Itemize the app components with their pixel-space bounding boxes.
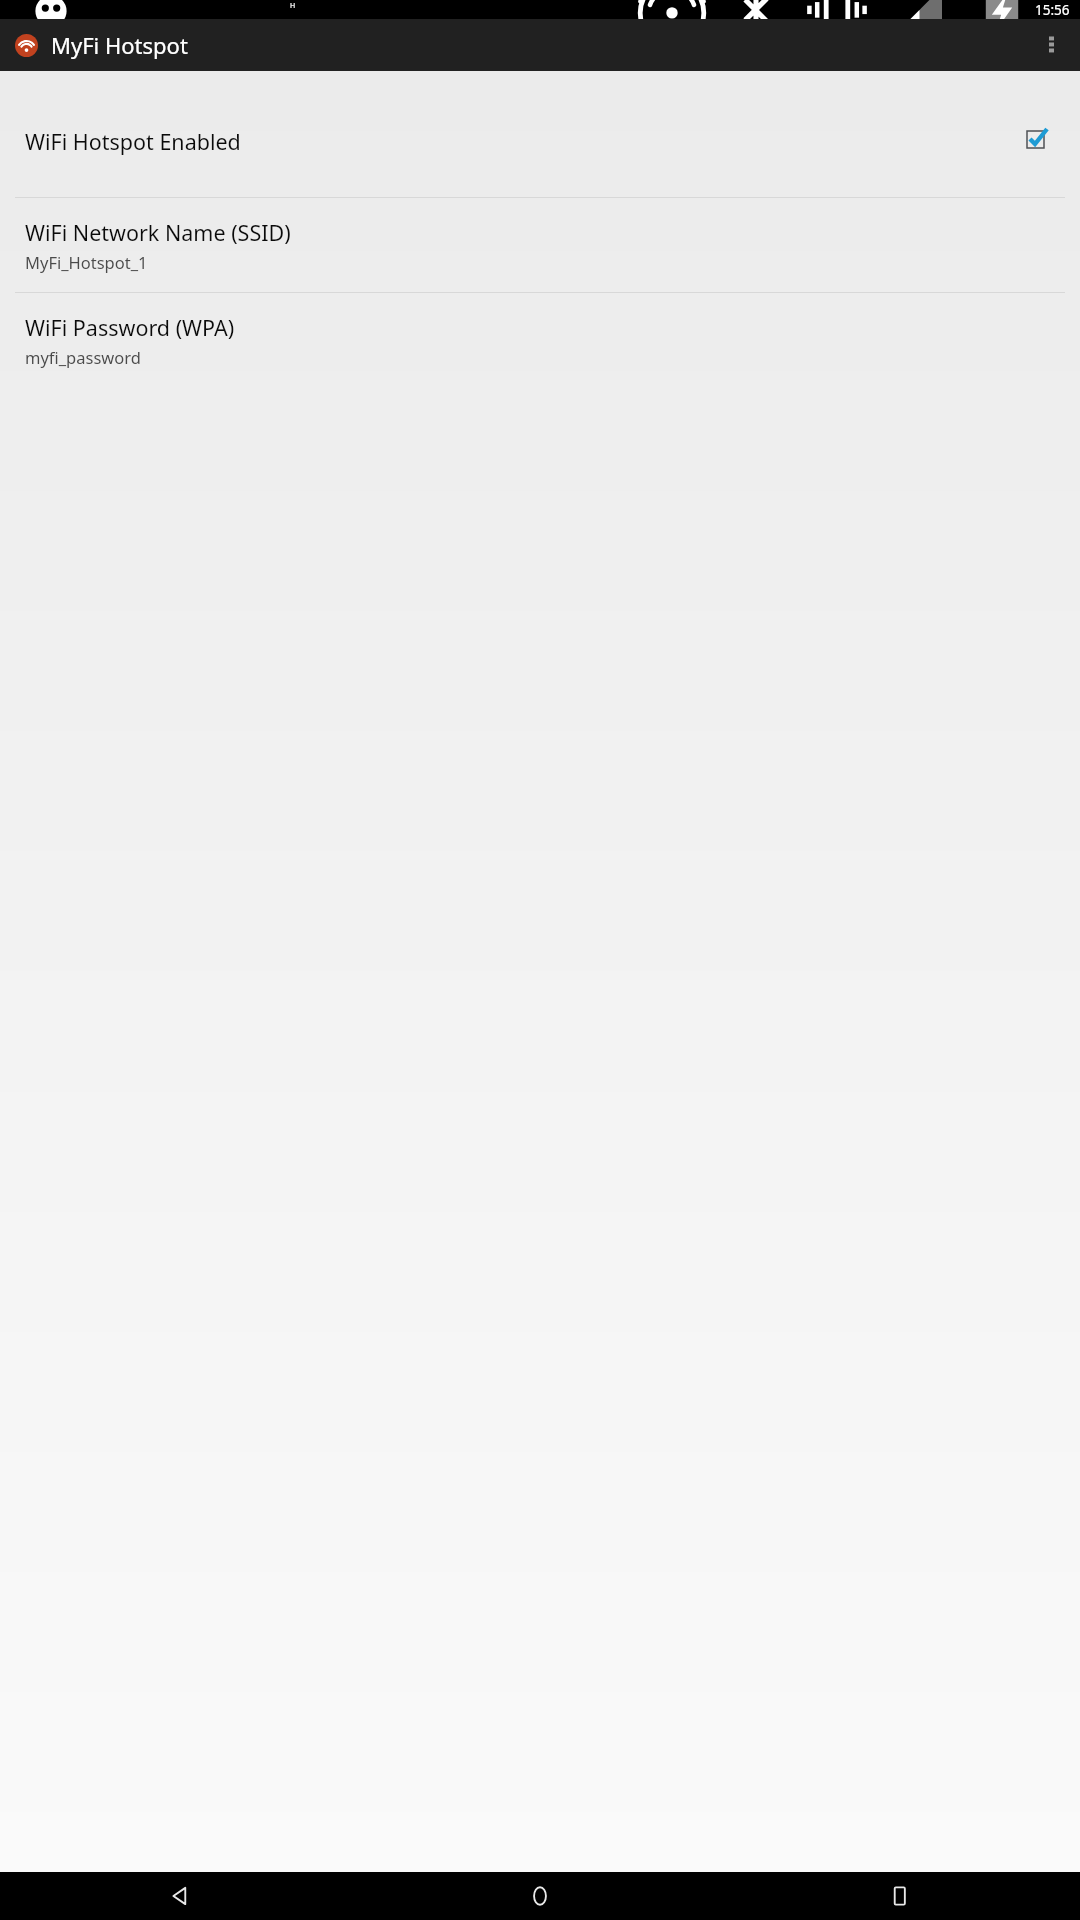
staticText: MyFi Hotspot [51, 30, 188, 60]
button[interactable]: WiFi Hotspot Enabled [0, 113, 1080, 169]
button[interactable]: More options [1035, 29, 1067, 61]
staticText: H [290, 1, 296, 11]
staticText: WiFi Network Name (SSID) [25, 218, 291, 247]
button[interactable]: WiFi Password (WPA) [0, 293, 1080, 387]
staticText: myfi_password [25, 346, 141, 368]
staticText: 15:56 [1035, 1, 1070, 19]
button[interactable]: Recent apps [720, 1872, 1080, 1920]
staticText: WiFi Password (WPA) [25, 313, 235, 342]
staticText: MyFi_Hotspot_1 [25, 251, 148, 273]
button[interactable]: Home [360, 1872, 720, 1920]
staticText: WiFi Hotspot Enabled [25, 127, 241, 156]
button[interactable]: Back [0, 1872, 360, 1920]
other: WiFi Hotspot Enabled checkbox [1024, 126, 1054, 156]
button[interactable]: WiFi Network Name (SSID) [0, 198, 1080, 292]
